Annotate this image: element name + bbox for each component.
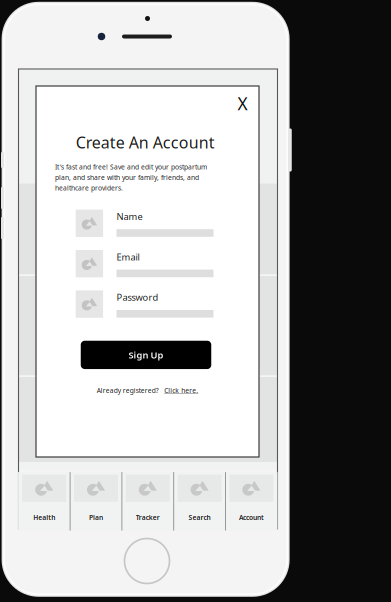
staticText: Sign Up — [128, 349, 163, 361]
button[interactable]: Plan — [70, 472, 122, 530]
staticText: Click here. — [164, 386, 198, 395]
staticText: Already registered? — [97, 386, 159, 395]
button[interactable]: Close — [229, 90, 255, 116]
button[interactable]: Password — [76, 290, 214, 318]
staticText: X — [237, 92, 247, 115]
button[interactable]: Sign Up — [81, 341, 211, 369]
button[interactable]: Health — [18, 472, 70, 530]
staticText: Search — [189, 513, 211, 522]
button[interactable]: Account — [225, 472, 277, 530]
staticText: Plan — [89, 513, 103, 522]
button[interactable]: Email — [76, 250, 214, 277]
staticText: Email — [116, 251, 139, 263]
staticText: Name — [116, 210, 142, 223]
staticText: Password — [116, 291, 158, 303]
button[interactable]: Search — [174, 472, 225, 530]
staticText: Create An Account — [76, 132, 215, 153]
staticText: Tracker — [136, 513, 160, 522]
staticText: Account — [239, 513, 264, 522]
button[interactable]: Tracker — [122, 472, 174, 530]
staticText: It's fast and free! Save and edit your p… — [55, 162, 207, 192]
button[interactable]: Name — [76, 210, 214, 237]
button[interactable]: Already registered? — [95, 384, 200, 397]
staticText: Health — [33, 513, 55, 522]
